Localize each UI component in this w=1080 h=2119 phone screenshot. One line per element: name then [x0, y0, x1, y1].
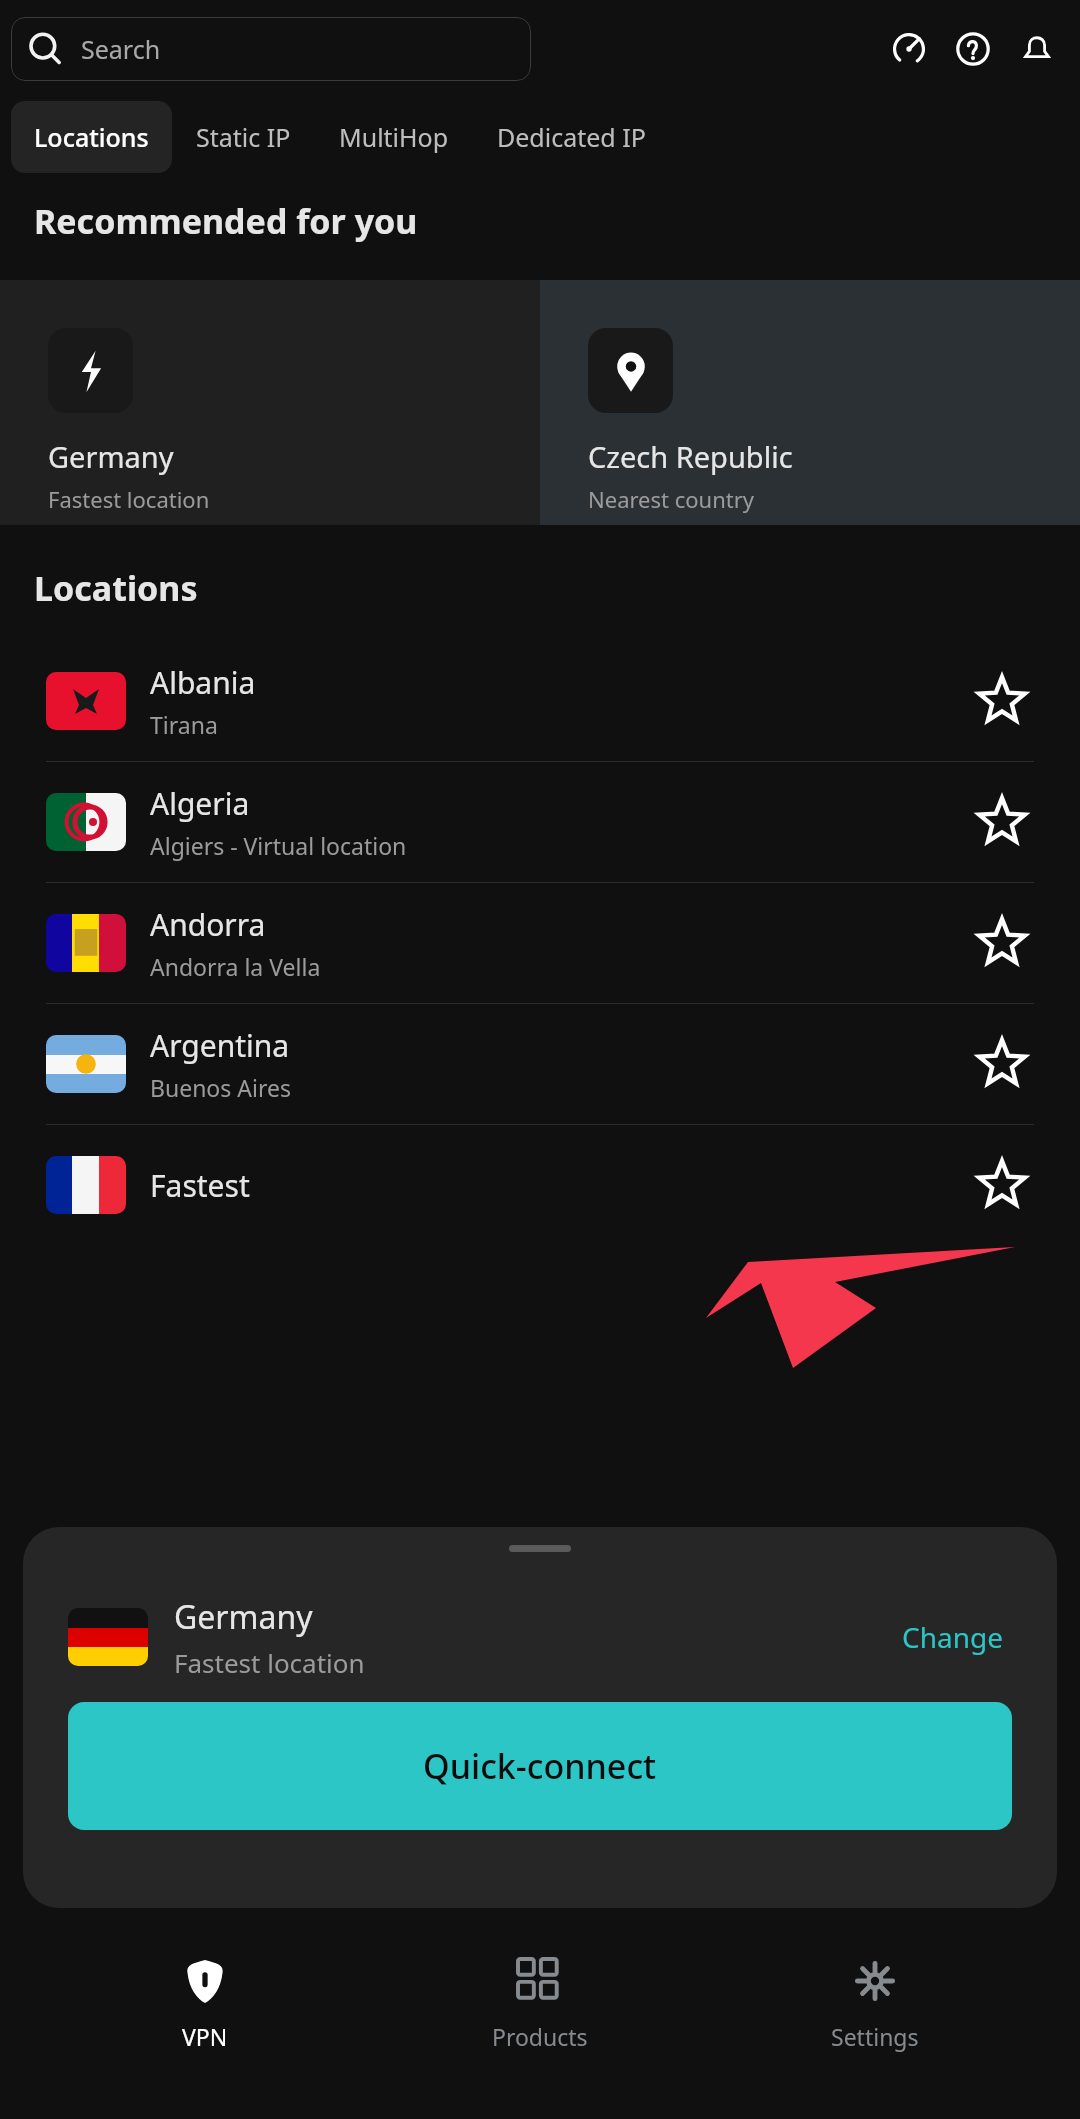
button[interactable]: Static IP	[172, 101, 315, 173]
button[interactable]: Favorite Argentina	[970, 1032, 1034, 1096]
staticText: Algeria	[150, 783, 250, 824]
staticText: Quick-connect	[423, 1743, 657, 1789]
button[interactable]: Help	[944, 20, 1002, 78]
button[interactable]: Notifications	[1008, 20, 1066, 78]
button[interactable]: MultiHop	[315, 101, 473, 173]
button[interactable]: Locations	[11, 101, 172, 173]
button[interactable]: Czech Republic	[540, 280, 1080, 525]
staticText: Dedicated IP	[497, 120, 646, 154]
button[interactable]: Change	[894, 1610, 1012, 1664]
button[interactable]: Germany	[68, 1582, 1012, 1692]
button[interactable]: Argentina	[0, 1004, 1080, 1124]
staticText: Fastest location	[48, 484, 210, 514]
button[interactable]: Quick-connect	[68, 1702, 1012, 1830]
staticText: Germany	[174, 1595, 313, 1639]
staticText: MultiHop	[339, 120, 449, 154]
button[interactable]: Algeria	[0, 762, 1080, 882]
button[interactable]: Settings	[745, 1951, 1005, 2060]
staticText: Tirana	[150, 709, 218, 740]
staticText: VPN	[182, 2021, 228, 2052]
staticText: Locations	[34, 565, 198, 611]
button[interactable]: Dedicated IP	[473, 101, 646, 173]
staticText: Albania	[150, 662, 256, 703]
staticText: Products	[492, 2021, 588, 2052]
button[interactable]: Favorite Fastest	[970, 1153, 1034, 1217]
button[interactable]: Favorite Andorra	[970, 911, 1034, 975]
staticText: Andorra la Vella	[150, 951, 321, 982]
staticText: Static IP	[196, 120, 291, 154]
button[interactable]: Products	[410, 1951, 670, 2060]
staticText: Fastest	[150, 1165, 250, 1206]
button[interactable]: Favorite Algeria	[970, 790, 1034, 854]
staticText: Recommended for you	[34, 198, 418, 244]
button[interactable]: Germany	[0, 280, 540, 525]
button[interactable]: Andorra	[0, 883, 1080, 1003]
staticText: Search	[81, 32, 161, 66]
staticText: Fastest location	[174, 1645, 365, 1680]
staticText: Andorra	[150, 904, 266, 945]
staticText: Locations	[34, 120, 149, 154]
staticText: Settings	[831, 2021, 919, 2052]
staticText: Buenos Aires	[150, 1072, 291, 1103]
staticText: Argentina	[150, 1025, 290, 1066]
button[interactable]: Speed test	[880, 20, 938, 78]
button[interactable]: Albania	[0, 641, 1080, 761]
button[interactable]: Search	[11, 17, 531, 81]
staticText: Czech Republic	[588, 437, 793, 476]
button[interactable]: VPN	[75, 1951, 335, 2060]
staticText: Germany	[48, 437, 174, 476]
button[interactable]: Fastest	[0, 1125, 1080, 1245]
staticText: Algiers - Virtual location	[150, 830, 407, 861]
staticText: Change	[902, 1618, 1004, 1656]
staticText: Nearest country	[588, 484, 755, 514]
button[interactable]: Favorite Albania	[970, 669, 1034, 733]
